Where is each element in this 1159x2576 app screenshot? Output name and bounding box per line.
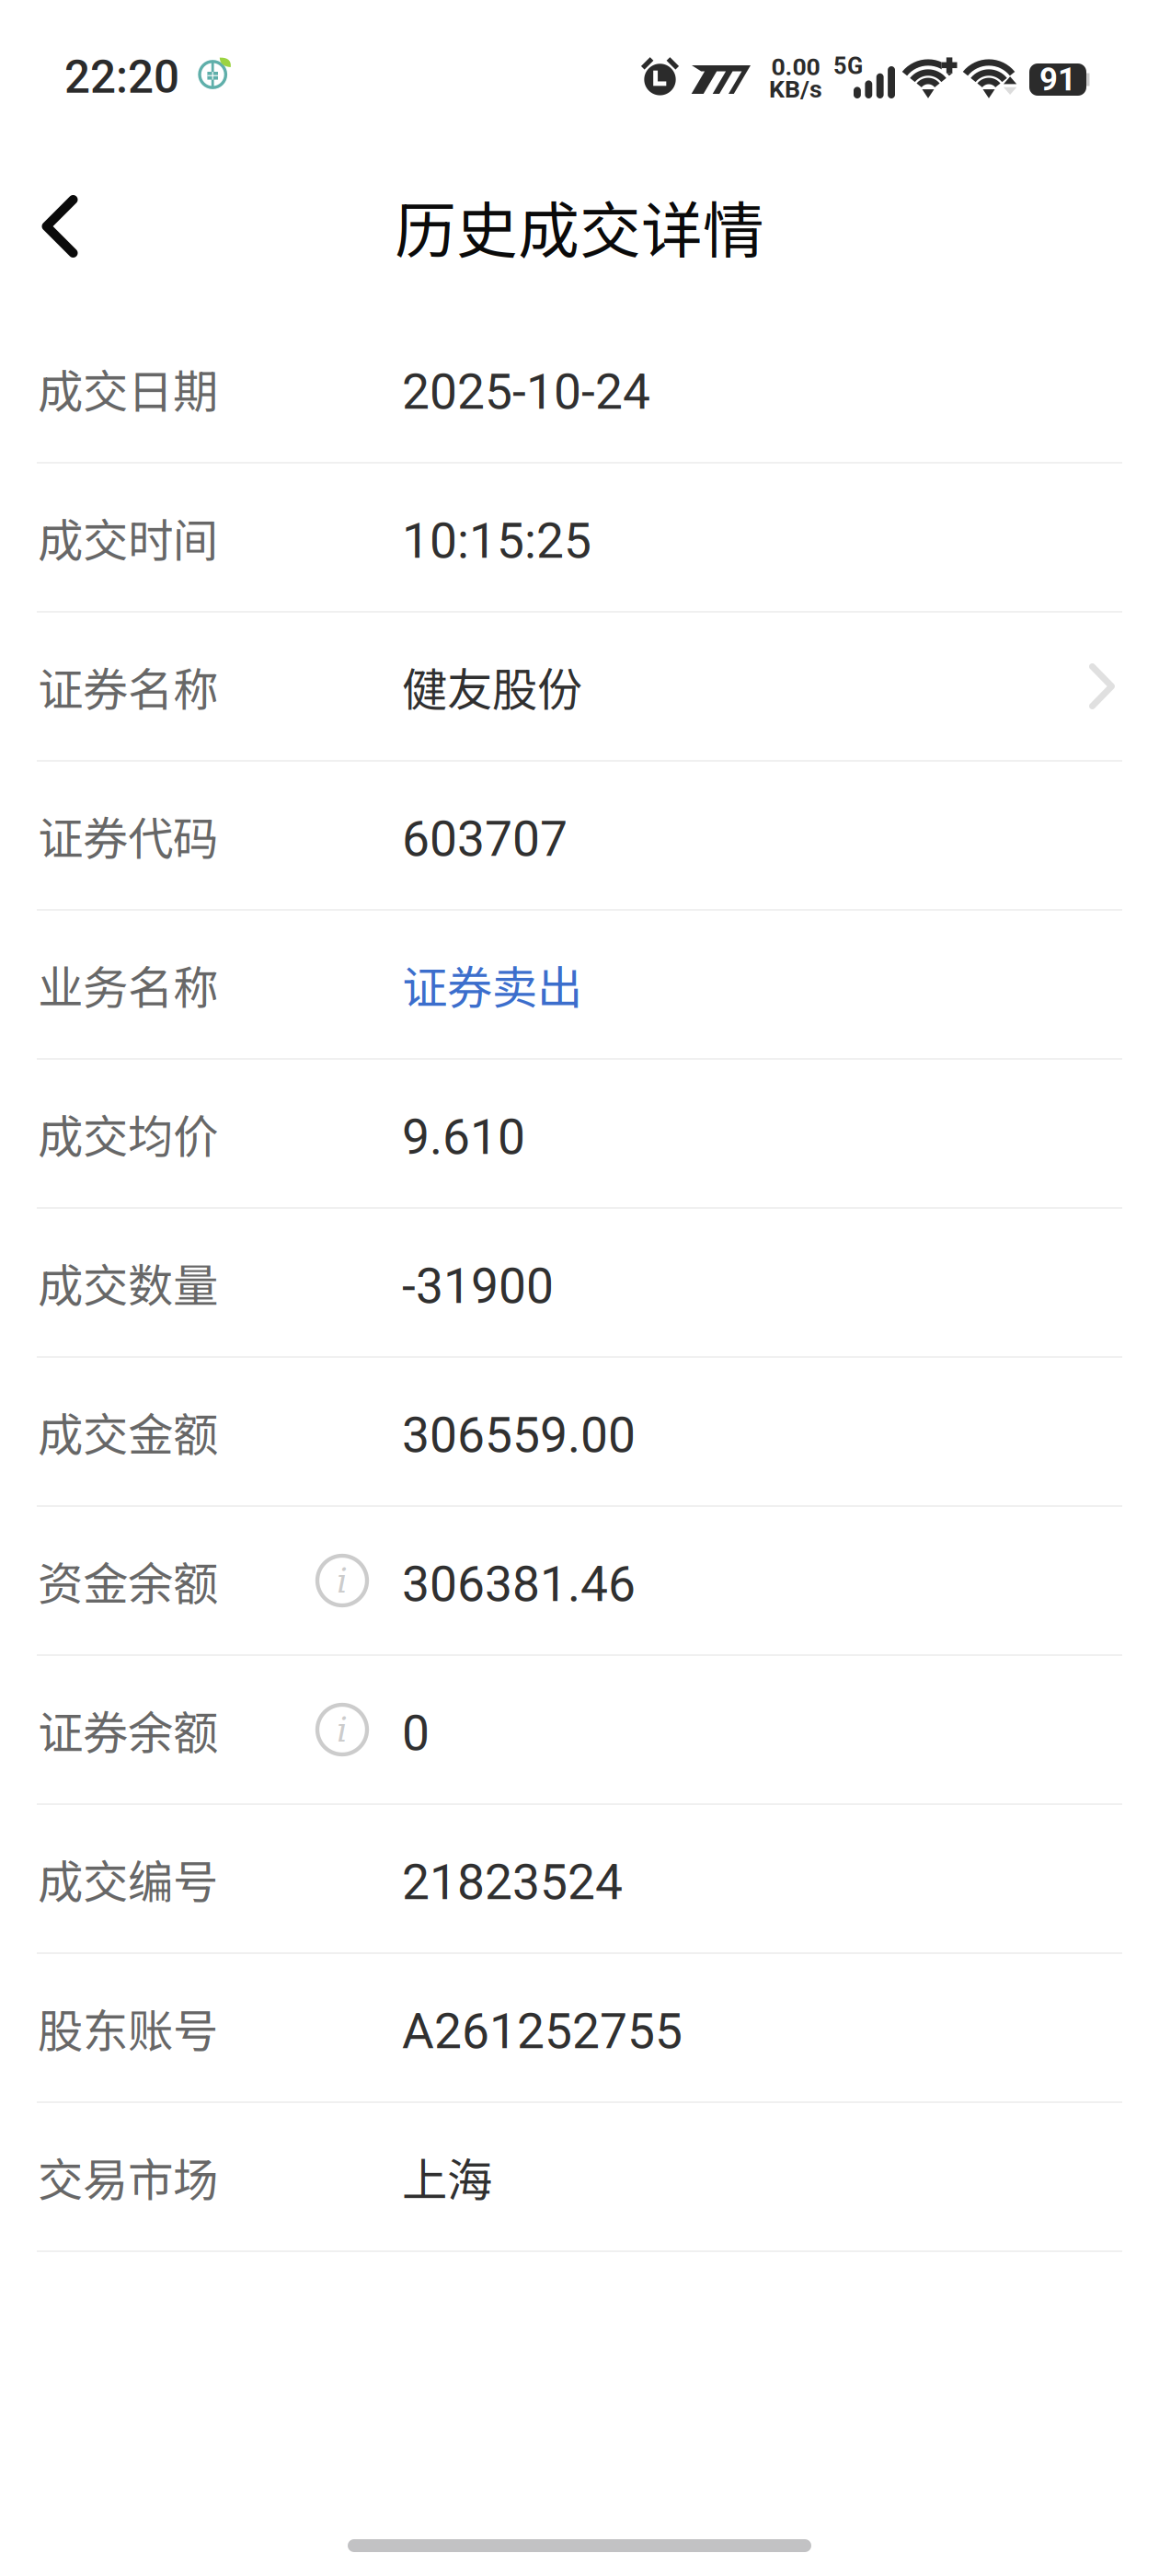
staticText: 21823524	[402, 1854, 623, 1911]
staticText: 成交均价	[38, 1101, 218, 1166]
staticText: 业务名称	[38, 952, 218, 1017]
staticText: 603707	[402, 810, 568, 868]
staticText: A261252755	[402, 2003, 683, 2060]
staticText: 健友股份	[402, 653, 582, 719]
staticText: 10:15:25	[402, 512, 591, 570]
staticText: 5G	[833, 52, 863, 80]
staticText: 成交日期	[38, 355, 218, 421]
staticText: 22:20	[64, 51, 179, 104]
staticText: 证券代码	[38, 803, 218, 868]
button[interactable]: 成交日期	[0, 315, 1159, 462]
staticText: 306381.46	[402, 1556, 636, 1613]
staticText: 资金余额	[38, 1548, 218, 1613]
button[interactable]: 成交编号	[0, 1805, 1159, 1952]
button[interactable]: 证券名称	[0, 613, 1159, 760]
button[interactable]: 证券余额	[0, 1656, 1159, 1803]
staticText: i	[337, 1561, 348, 1601]
staticText: 成交金额	[38, 1399, 218, 1464]
button[interactable]: 股东账号	[0, 1954, 1159, 2101]
staticText: 股东账号	[38, 1995, 218, 2061]
staticText: KB/s	[769, 75, 822, 104]
staticText: 成交时间	[38, 504, 218, 570]
staticText: 9.610	[402, 1108, 525, 1166]
staticText: 历史成交详情	[395, 182, 764, 271]
staticText: 证券余额	[38, 1697, 218, 1762]
button[interactable]: More info	[38, 1705, 367, 1754]
button[interactable]: 成交数量	[0, 1209, 1159, 1356]
staticText: 91	[1039, 61, 1076, 98]
button[interactable]: Back	[0, 167, 120, 286]
staticText: 0	[402, 1705, 430, 1762]
staticText: 交易市场	[38, 2144, 218, 2210]
staticText: i	[337, 1710, 348, 1750]
staticText: 成交数量	[38, 1250, 218, 1315]
staticText: 306559.00	[402, 1406, 636, 1464]
staticText: 2025-10-24	[402, 363, 650, 421]
button[interactable]: 资金余额	[0, 1507, 1159, 1654]
button[interactable]: 交易市场	[0, 2103, 1159, 2250]
button[interactable]: 证券代码	[0, 762, 1159, 909]
button[interactable]: More info	[38, 1556, 367, 1605]
staticText: 证券名称	[38, 653, 218, 719]
staticText: 上海	[402, 2144, 492, 2210]
button[interactable]: 成交时间	[0, 464, 1159, 611]
staticText: -31900	[402, 1257, 554, 1315]
staticText: 证券卖出	[402, 952, 582, 1017]
button[interactable]: 成交金额	[0, 1358, 1159, 1505]
button[interactable]: 业务名称	[0, 911, 1159, 1058]
button[interactable]: 成交均价	[0, 1060, 1159, 1207]
staticText: 成交编号	[38, 1846, 218, 1911]
staticText: 0.00	[771, 52, 820, 81]
